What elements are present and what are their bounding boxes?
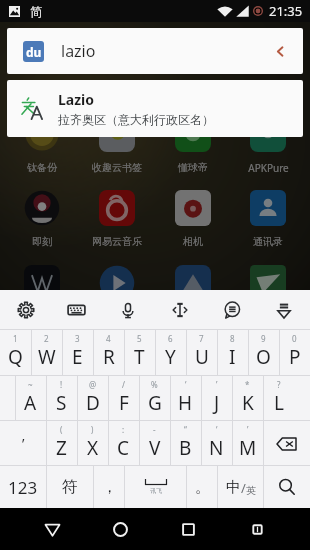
button[interactable]: 123 <box>0 466 46 508</box>
button[interactable]: / <box>108 376 139 421</box>
button[interactable]: @ <box>77 376 108 421</box>
staticText: 网易云音乐 <box>92 235 142 248</box>
button[interactable]: Back <box>18 508 86 550</box>
button[interactable]: Keyboard layouts <box>51 290 102 330</box>
button[interactable]: 网易云音乐 <box>84 190 150 248</box>
button[interactable] <box>235 265 301 310</box>
staticText: / <box>241 479 246 497</box>
staticText: M <box>239 435 257 461</box>
button[interactable]: 收趣云书签 <box>84 116 150 174</box>
button[interactable]: Settings <box>0 290 51 330</box>
staticText: Q <box>8 344 23 370</box>
staticText: G <box>148 390 162 416</box>
staticText: E <box>72 344 83 370</box>
button[interactable]: ( <box>46 421 77 466</box>
button[interactable]: Lazio <box>7 80 303 137</box>
staticText: ’ <box>216 379 218 390</box>
staticText: 。 <box>195 478 210 497</box>
staticText: : <box>122 424 125 435</box>
button[interactable]: - <box>139 421 170 466</box>
button[interactable]: 6 <box>155 330 186 376</box>
button[interactable]: ‘ <box>201 421 232 466</box>
button[interactable]: 1 <box>0 330 31 376</box>
button[interactable]: Move cursor <box>154 290 206 330</box>
button[interactable]: ) <box>77 421 108 466</box>
button[interactable]: ’ <box>201 376 232 421</box>
staticText: 收趣云书签 <box>92 161 142 174</box>
button[interactable]: 钛备份 <box>9 116 75 174</box>
button[interactable]: * <box>232 376 263 421</box>
button[interactable]: Switch input method <box>223 508 292 550</box>
staticText: Z <box>56 435 67 461</box>
button[interactable]: 8 <box>217 330 248 376</box>
staticText: S <box>56 390 67 416</box>
staticText: 0 <box>292 333 297 344</box>
button[interactable]: du <box>7 28 303 74</box>
staticText: / <box>122 379 125 390</box>
button[interactable]: ’ <box>0 421 46 466</box>
staticText: ’ <box>247 424 249 435</box>
staticText: APKPure <box>248 161 289 175</box>
button[interactable]: 相机 <box>160 190 226 248</box>
staticText: 1 <box>13 333 18 344</box>
button[interactable]: 7 <box>186 330 217 376</box>
staticText: ! <box>60 379 63 390</box>
button[interactable]: Backspace <box>263 421 310 466</box>
button[interactable]: 0 <box>279 330 310 376</box>
button[interactable]: 符 <box>47 466 93 508</box>
staticText: 9 <box>261 333 266 344</box>
staticText: J <box>214 390 220 416</box>
button[interactable]: 5 <box>124 330 155 376</box>
button[interactable]: 通讯录 <box>235 190 301 248</box>
staticText: C <box>117 435 130 461</box>
button[interactable]: % <box>139 376 170 421</box>
button[interactable]: Search <box>264 466 310 508</box>
button[interactable]: Collapse suggestion <box>267 38 293 64</box>
staticText: 简 <box>30 4 42 19</box>
staticText: lazio <box>61 40 96 62</box>
button[interactable]: 9 <box>248 330 279 376</box>
staticText: “ <box>184 424 187 435</box>
staticText: 8 <box>230 333 235 344</box>
staticText: Y <box>165 344 176 370</box>
button[interactable] <box>84 265 150 310</box>
staticText: 讯飞 <box>150 487 162 495</box>
staticText: P <box>289 344 301 370</box>
button[interactable]: 懂球帝 <box>160 116 226 174</box>
staticText: @ <box>89 379 97 390</box>
button[interactable]: “ <box>170 421 201 466</box>
button[interactable]: ‘ <box>170 376 201 421</box>
button[interactable]: Voice input <box>102 290 154 330</box>
button[interactable]: ’ <box>232 421 263 466</box>
button[interactable]: Messages <box>206 290 258 330</box>
staticText: 相机 <box>183 235 203 248</box>
button[interactable] <box>160 265 226 310</box>
staticText: 即刻 <box>32 235 52 248</box>
button[interactable]: ~ <box>15 376 46 421</box>
button[interactable]: 。 <box>187 466 217 508</box>
button[interactable]: Hide keyboard <box>258 290 310 330</box>
button[interactable]: Home <box>86 508 154 550</box>
staticText: L <box>274 390 284 416</box>
button[interactable]: Space <box>125 466 186 508</box>
staticText: 3 <box>75 333 80 344</box>
staticText: X <box>87 435 99 461</box>
button[interactable]: ， <box>94 466 124 508</box>
button[interactable]: 中 <box>218 466 263 508</box>
staticText: B <box>179 435 192 461</box>
staticText: ( <box>60 424 63 435</box>
button[interactable]: : <box>108 421 139 466</box>
staticText: U <box>195 344 209 370</box>
button[interactable]: 2 <box>31 330 62 376</box>
button[interactable]: Recent apps <box>154 508 223 550</box>
button[interactable]: ! <box>46 376 77 421</box>
staticText: 21:35 <box>269 2 303 20</box>
button[interactable]: 4 <box>93 330 124 376</box>
button[interactable]: ? <box>263 376 294 421</box>
button[interactable]: 3 <box>62 330 93 376</box>
staticText: 懂球帝 <box>178 161 208 174</box>
button[interactable]: 即刻 <box>9 190 75 248</box>
staticText: - <box>153 424 156 435</box>
button[interactable]: APKPure <box>235 116 301 175</box>
button[interactable] <box>9 265 75 310</box>
